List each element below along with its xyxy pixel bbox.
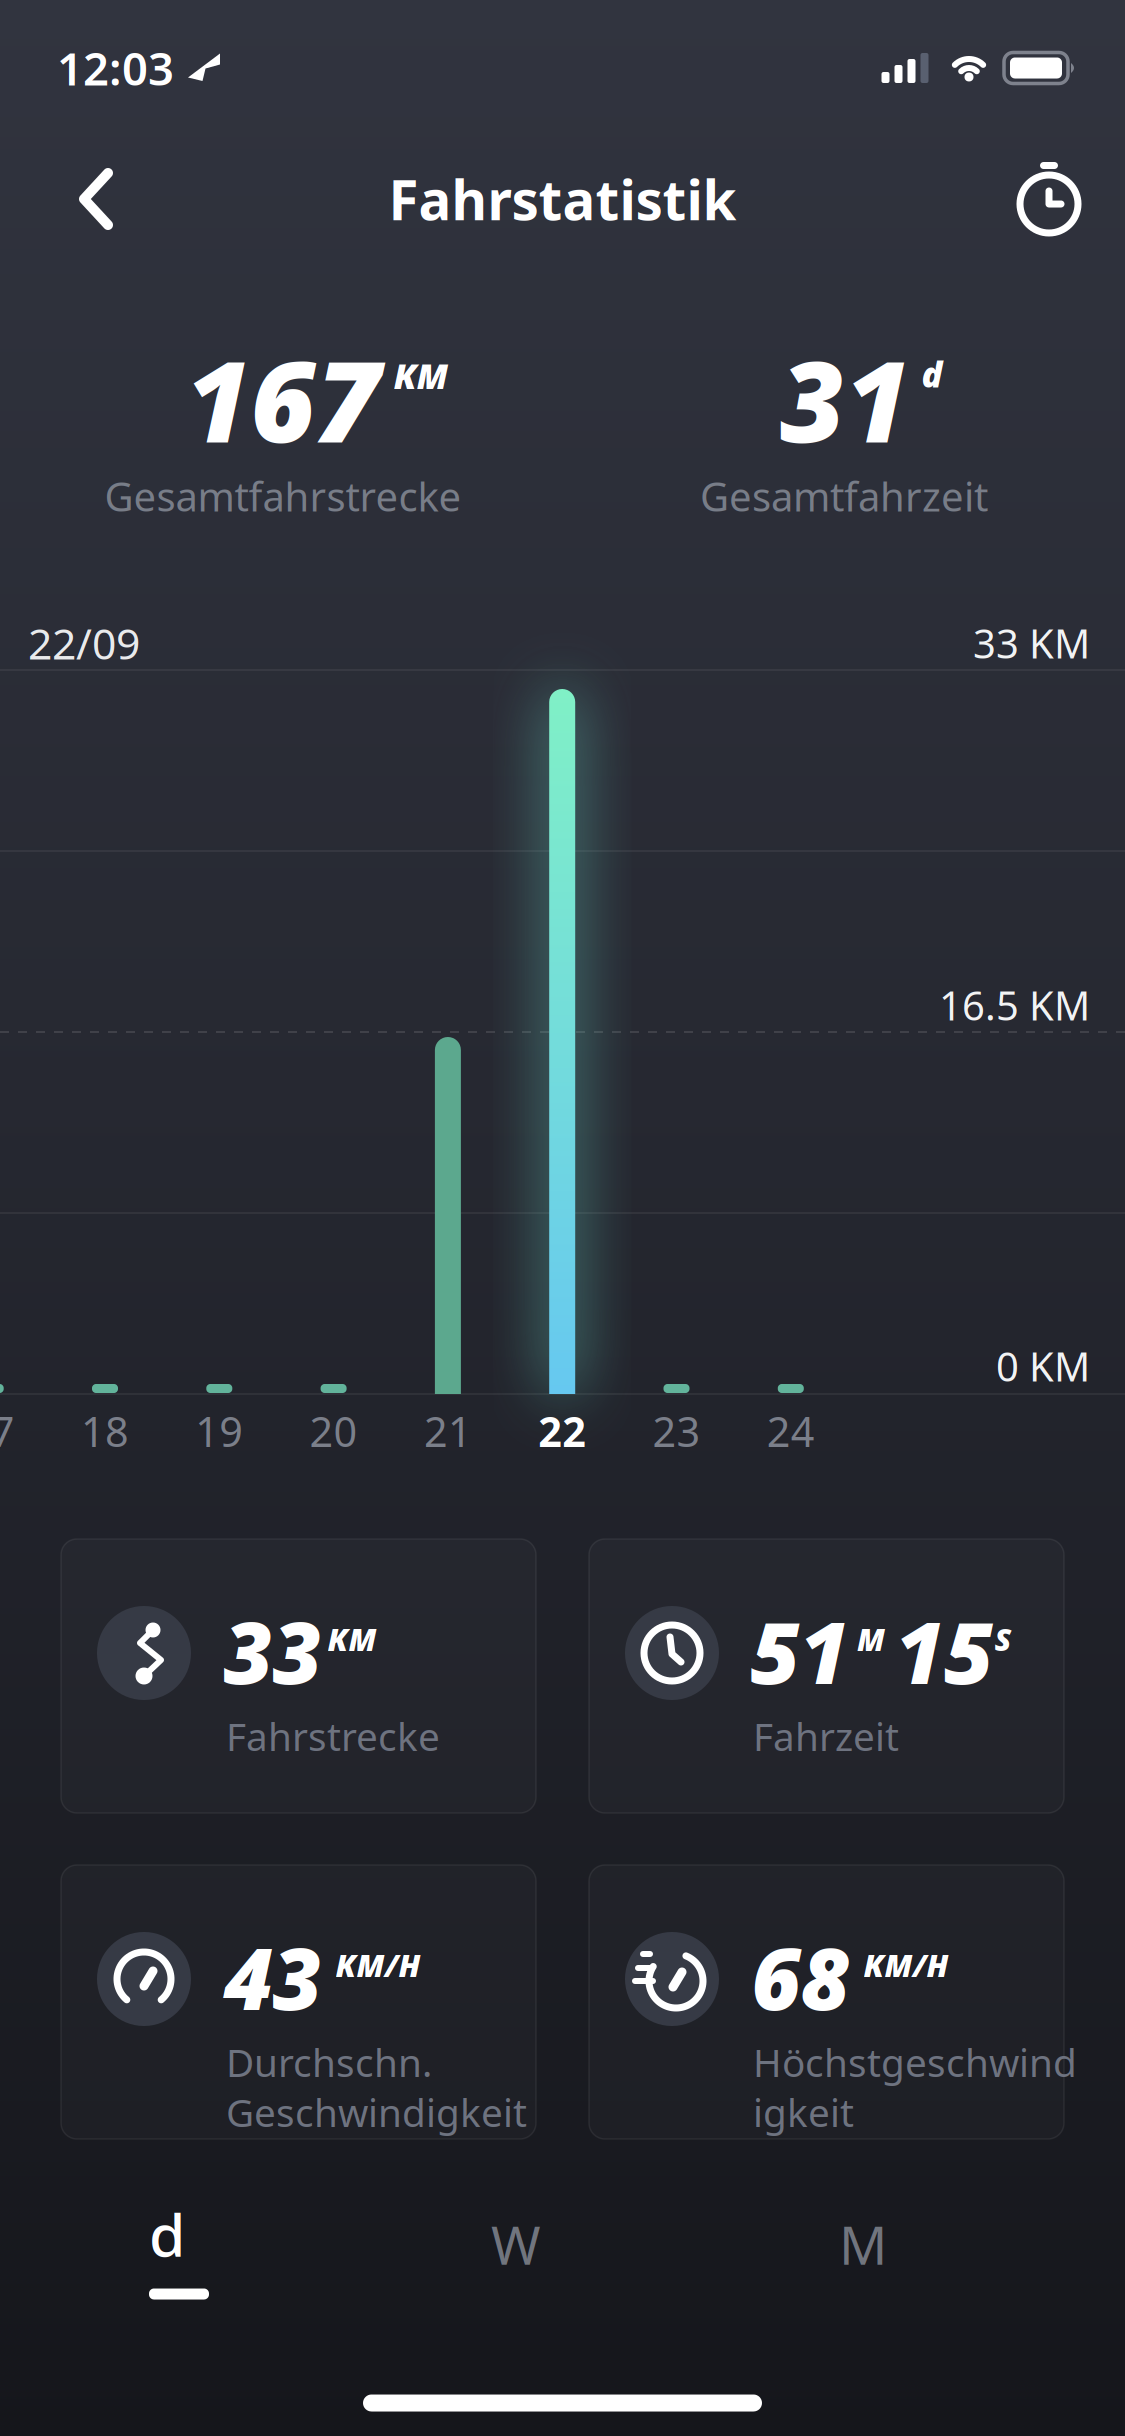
staticText: 24 bbox=[767, 1404, 815, 1458]
button[interactable]: W bbox=[406, 2178, 626, 2310]
staticText: 68 bbox=[751, 1920, 849, 2034]
staticText: 51 bbox=[750, 1594, 848, 1708]
staticText: M bbox=[857, 1619, 885, 1659]
staticText: S bbox=[994, 1619, 1011, 1659]
staticText: Geschwindigkeit bbox=[226, 2086, 527, 2138]
staticText: Fahrstrecke bbox=[226, 1710, 440, 1762]
staticText: KM bbox=[393, 353, 448, 399]
staticText: Durchschn. bbox=[226, 2036, 432, 2088]
button[interactable]: d bbox=[57, 2182, 277, 2314]
staticText: M bbox=[839, 2209, 887, 2279]
button[interactable]: Timer bbox=[1014, 161, 1084, 233]
staticText: KM/H bbox=[335, 1945, 420, 1985]
staticText: KM/H bbox=[863, 1945, 948, 1985]
staticText: KM bbox=[327, 1619, 376, 1659]
staticText: igkeit bbox=[753, 2086, 854, 2138]
staticText: 23 bbox=[652, 1404, 700, 1458]
staticText: 33 bbox=[223, 1594, 321, 1708]
staticText: 167 bbox=[185, 325, 380, 473]
staticText: 18 bbox=[81, 1404, 129, 1458]
staticText: Fahrstatistik bbox=[388, 163, 736, 235]
staticText: 15 bbox=[895, 1594, 993, 1708]
staticText: 33 KM bbox=[973, 616, 1090, 669]
button[interactable]: Back bbox=[74, 163, 118, 235]
button[interactable]: M bbox=[753, 2178, 973, 2310]
staticText: 21 bbox=[424, 1404, 472, 1458]
staticText: Fahrzeit bbox=[753, 1710, 899, 1762]
staticText: Gesamtfahrzeit bbox=[700, 469, 988, 522]
staticText: 12:03 bbox=[57, 38, 174, 98]
staticText: 22/09 bbox=[28, 615, 140, 671]
staticText: d bbox=[149, 2195, 185, 2273]
staticText: 43 bbox=[223, 1920, 321, 2034]
staticText: 0 KM bbox=[996, 1339, 1090, 1392]
staticText: d bbox=[921, 351, 942, 397]
staticText: 16.5 KM bbox=[939, 978, 1090, 1031]
staticText: Gesamtfahrstrecke bbox=[104, 469, 461, 522]
staticText: 17 bbox=[0, 1404, 15, 1458]
staticText: 31 bbox=[780, 325, 910, 473]
staticText: 19 bbox=[195, 1404, 243, 1458]
staticText: W bbox=[491, 2209, 541, 2279]
staticText: 20 bbox=[310, 1404, 358, 1458]
staticText: 22 bbox=[538, 1404, 586, 1458]
staticText: Höchstgeschwind bbox=[753, 2036, 1077, 2088]
